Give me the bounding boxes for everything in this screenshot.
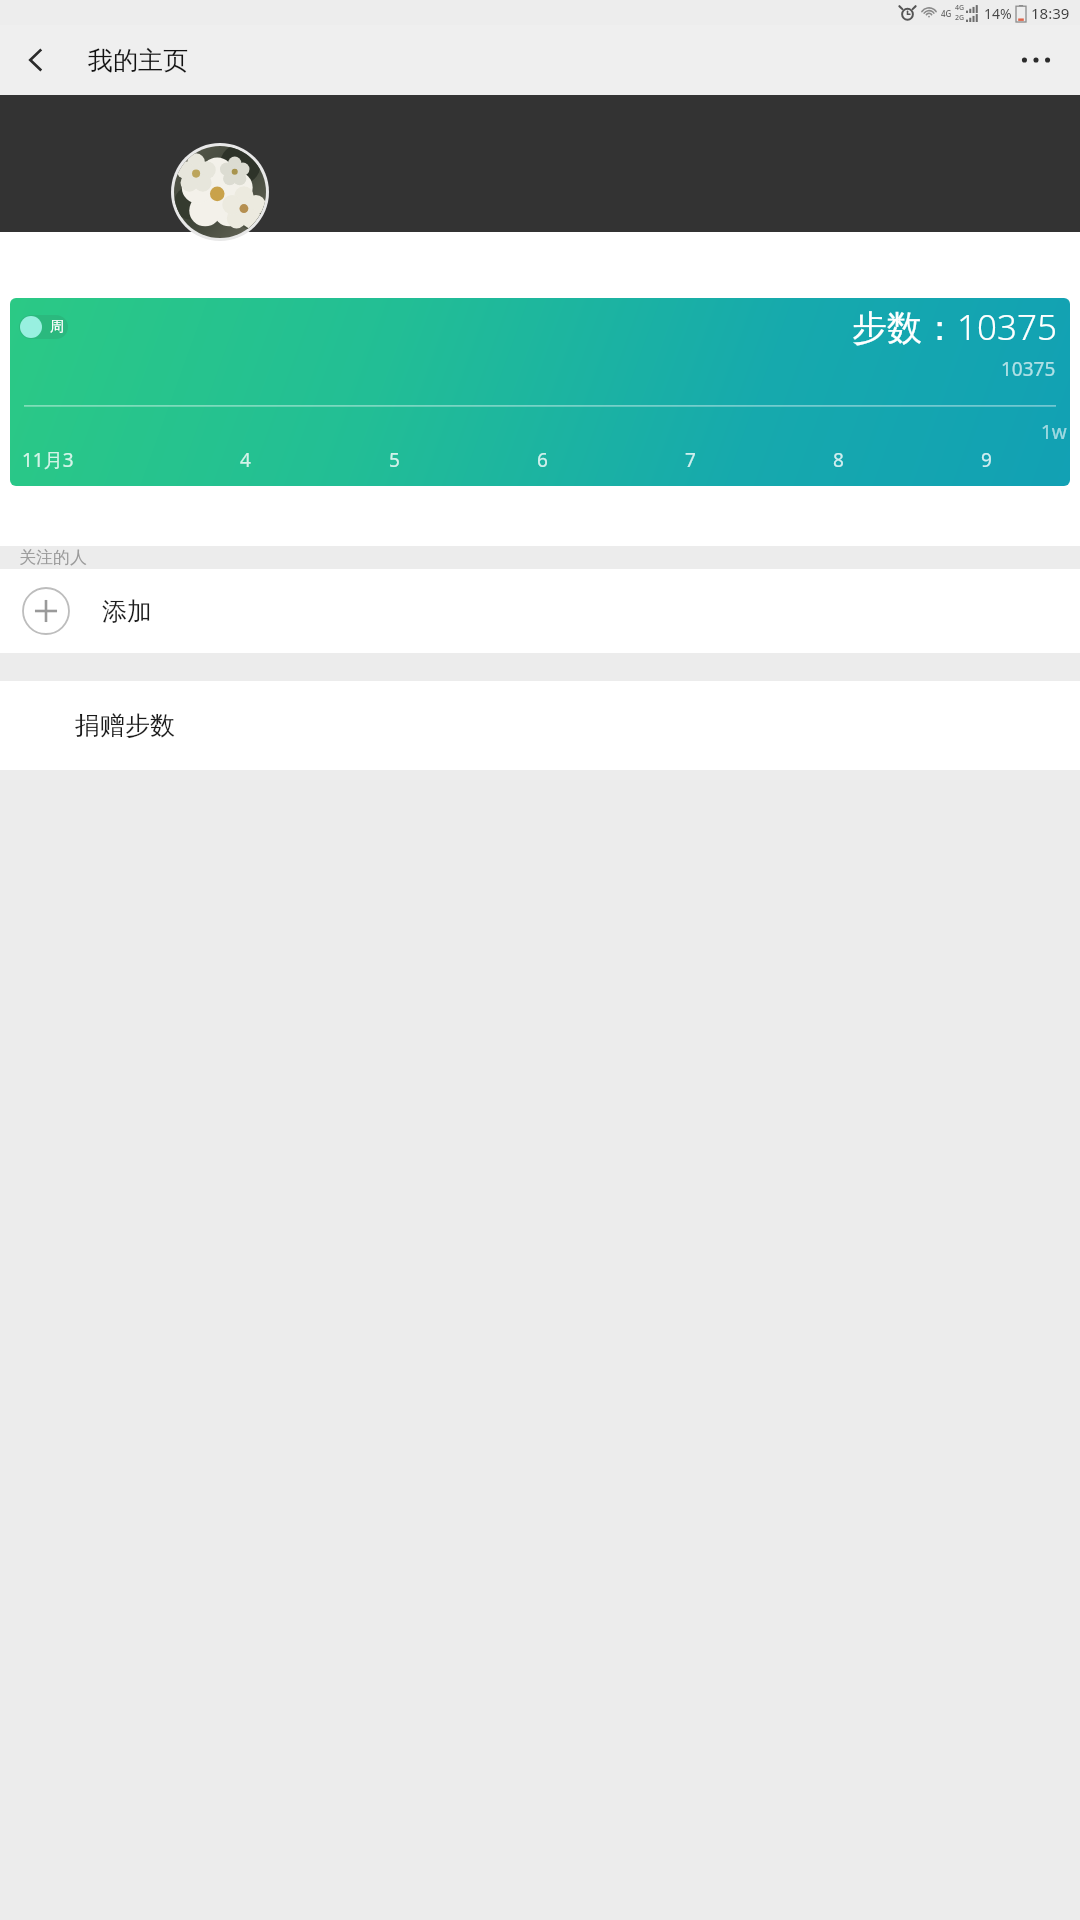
staticText: 7: [685, 447, 696, 473]
staticText: 4G: [955, 3, 965, 13]
button[interactable]: More options: [1004, 28, 1068, 92]
staticText: 4: [240, 447, 251, 473]
staticText: 11月3: [22, 447, 74, 473]
staticText: 4G: [941, 8, 952, 19]
staticText: 步数：10375: [852, 303, 1057, 351]
button[interactable]: Back: [6, 30, 66, 90]
staticText: 1w: [1041, 419, 1067, 445]
staticText: 添加: [102, 596, 152, 627]
button[interactable]: 捐赠步数: [0, 681, 1080, 770]
button[interactable]: 添加: [0, 569, 1080, 653]
staticText: 14%: [984, 4, 1012, 23]
staticText: 6: [537, 447, 548, 473]
button[interactable]: 周: [19, 315, 68, 339]
button[interactable]: Profile photo: [171, 143, 269, 241]
staticText: 我的主页: [88, 45, 188, 76]
staticText: 5: [389, 447, 400, 473]
staticText: 10375: [1001, 356, 1056, 382]
staticText: 关注的人: [19, 547, 87, 568]
staticText: 18:39: [1031, 3, 1070, 23]
staticText: 周: [50, 318, 64, 336]
staticText: 8: [833, 447, 844, 473]
staticText: 2G: [955, 13, 965, 23]
staticText: 捐赠步数: [75, 710, 175, 741]
button[interactable]: 周: [10, 298, 1070, 486]
staticText: 9: [981, 447, 992, 473]
